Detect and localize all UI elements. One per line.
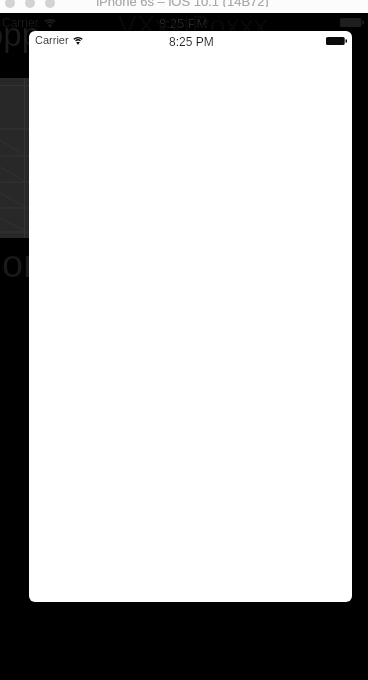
staticText: on xyxy=(2,243,45,285)
staticText: iPhone 6s – iOS 10.1 (14B72) xyxy=(96,0,269,7)
button[interactable]: Zoom window xyxy=(45,0,55,8)
staticText: 8:25 PM xyxy=(169,35,214,48)
staticText: VXxxtPoxxx xyxy=(118,10,268,41)
staticText: Carrier xyxy=(2,16,39,29)
button[interactable]: Close window xyxy=(5,0,15,8)
staticText: Carrier xyxy=(35,34,69,46)
staticText: 8:25 PM xyxy=(159,16,208,31)
button[interactable]: Minimize window xyxy=(25,0,35,8)
staticText: opp xyxy=(0,16,41,53)
